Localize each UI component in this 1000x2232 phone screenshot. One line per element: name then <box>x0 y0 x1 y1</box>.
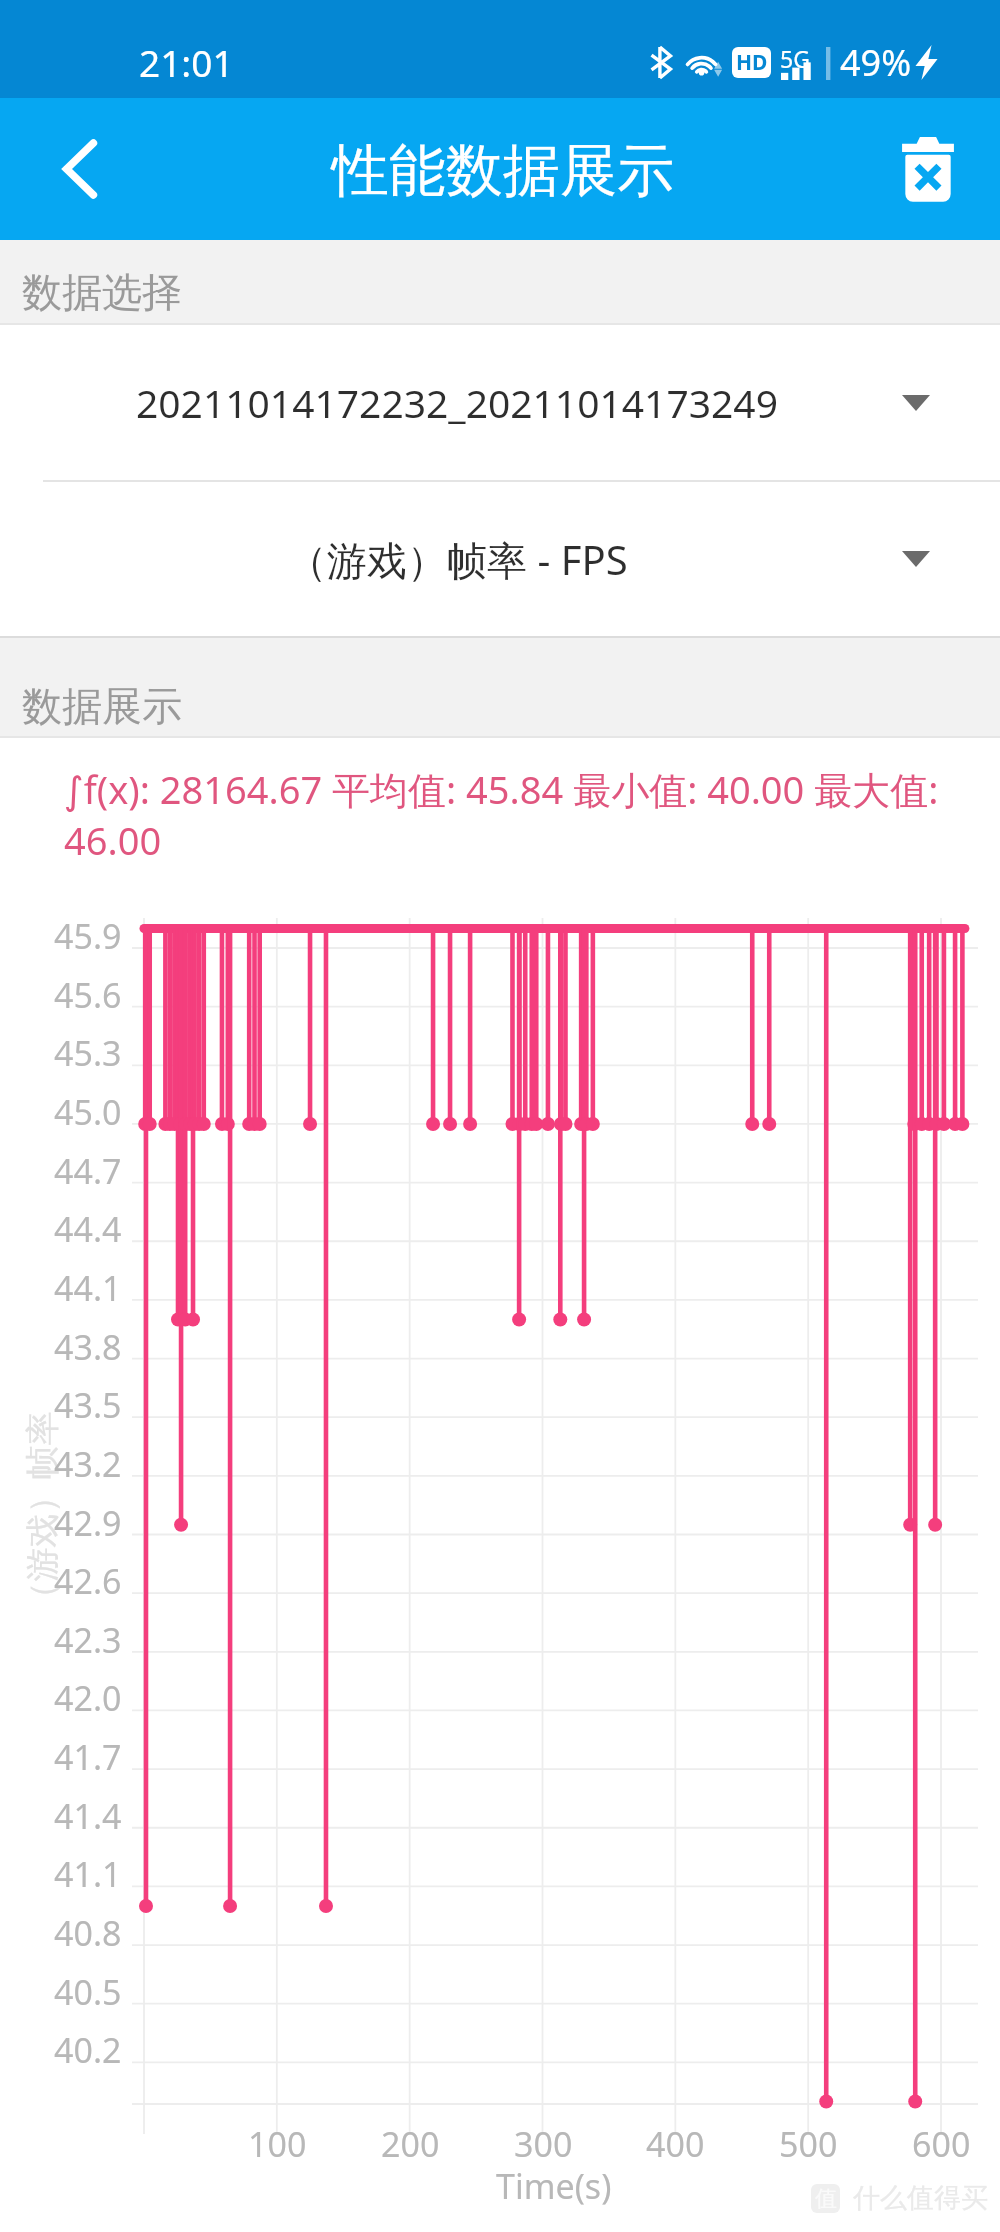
staticText: 42.6 <box>54 1558 122 1604</box>
button[interactable]: （游戏）帧率 - FPS <box>0 482 1000 636</box>
staticText: 40.2 <box>54 2027 122 2073</box>
staticText: 44.1 <box>54 1265 122 1311</box>
staticText: 20211014172232_20211014173249 <box>136 376 778 429</box>
staticText: 什么值得买 <box>853 2181 988 2215</box>
staticText: 45.6 <box>54 972 122 1018</box>
button[interactable]: Delete <box>880 121 976 217</box>
staticText: 500 <box>779 2121 838 2167</box>
staticText: （游戏）帧率 - FPS <box>287 532 628 587</box>
staticText: 数据选择 <box>22 267 182 317</box>
staticText: 数据展示 <box>22 681 182 731</box>
staticText: 200 <box>381 2121 440 2167</box>
staticText: 42.3 <box>54 1617 122 1663</box>
staticText: 40.8 <box>54 1910 122 1956</box>
staticText: 42.0 <box>54 1675 122 1721</box>
staticText: Time(s) <box>496 2163 612 2209</box>
staticText: 41.1 <box>54 1851 122 1897</box>
staticText: 43.8 <box>54 1324 122 1370</box>
staticText: 44.7 <box>54 1148 122 1194</box>
staticText: （游戏）帧率 <box>20 1411 63 1615</box>
staticText: 45.3 <box>54 1030 122 1076</box>
staticText: 41.7 <box>54 1734 122 1780</box>
staticText: 40.5 <box>54 1969 122 2015</box>
staticText: 21:01 <box>139 37 234 87</box>
staticText: 41.4 <box>54 1793 122 1839</box>
staticText: 43.2 <box>54 1441 122 1487</box>
staticText: 5G <box>780 43 810 74</box>
staticText: 49% <box>840 38 912 87</box>
staticText: 42.9 <box>54 1500 122 1546</box>
staticText: 600 <box>912 2121 971 2167</box>
button[interactable]: 20211014172232_20211014173249 <box>0 325 1000 480</box>
staticText: 100 <box>248 2121 307 2167</box>
staticText: 45.0 <box>54 1089 122 1135</box>
staticText: 300 <box>514 2121 573 2167</box>
staticText: 性能数据展示 <box>332 135 674 207</box>
staticText: 值 <box>815 2185 837 2213</box>
staticText: 400 <box>646 2121 705 2167</box>
staticText: 43.5 <box>54 1382 122 1428</box>
staticText: ∫f(x): 28164.67 平均值: 45.84 最小值: 40.00 最大… <box>64 763 980 866</box>
staticText: 45.9 <box>54 913 122 959</box>
button[interactable]: Back <box>34 123 126 215</box>
staticText: 44.4 <box>54 1206 122 1252</box>
staticText: HD <box>736 48 768 77</box>
